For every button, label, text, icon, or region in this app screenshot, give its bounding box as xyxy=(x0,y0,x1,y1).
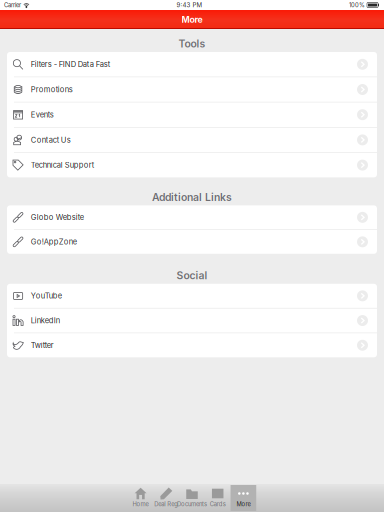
staticText: Filters - FIND Data Fast xyxy=(31,60,110,69)
button[interactable]: Go!AppZone xyxy=(7,230,377,254)
button[interactable]: Technical Support xyxy=(7,153,377,177)
button[interactable]: Filters - FIND Data Fast xyxy=(7,52,377,77)
staticText: 100% xyxy=(349,1,365,9)
staticText: Go!AppZone xyxy=(31,237,77,246)
staticText: Promotions xyxy=(31,85,73,94)
staticText: Twitter xyxy=(31,341,54,350)
staticText: Tools xyxy=(178,37,205,50)
staticText: More xyxy=(181,14,202,25)
staticText: Home xyxy=(133,500,149,508)
staticText: Additional Links xyxy=(152,191,232,203)
button[interactable]: Home xyxy=(128,485,153,511)
staticText: Technical Support xyxy=(31,160,94,170)
button[interactable]: Promotions xyxy=(7,77,377,102)
staticText: More xyxy=(236,500,250,508)
staticText: LinkedIn xyxy=(31,316,60,325)
button[interactable]: Twitter xyxy=(7,333,377,357)
staticText: 9:43 PM xyxy=(176,1,202,9)
staticText: Documents xyxy=(177,500,207,508)
button[interactable]: YouTube xyxy=(7,284,377,308)
button[interactable]: Documents xyxy=(179,485,205,511)
staticText: Contact Us xyxy=(31,135,71,144)
staticText: Deal Reg xyxy=(154,500,178,508)
staticText: YouTube xyxy=(31,291,62,300)
staticText: Social xyxy=(176,269,207,282)
button[interactable]: Events xyxy=(7,102,377,127)
button[interactable]: LinkedIn xyxy=(7,308,377,333)
staticText: Events xyxy=(31,110,54,119)
button[interactable]: More xyxy=(230,485,256,511)
button[interactable]: Deal Reg xyxy=(153,485,179,511)
staticText: Carrier xyxy=(4,1,21,9)
button[interactable]: Globo Website xyxy=(7,205,377,229)
staticText: Globo Website xyxy=(31,213,84,222)
staticText: Cards xyxy=(210,500,226,508)
button[interactable]: Contact Us xyxy=(7,128,377,152)
button[interactable]: Cards xyxy=(205,485,230,511)
